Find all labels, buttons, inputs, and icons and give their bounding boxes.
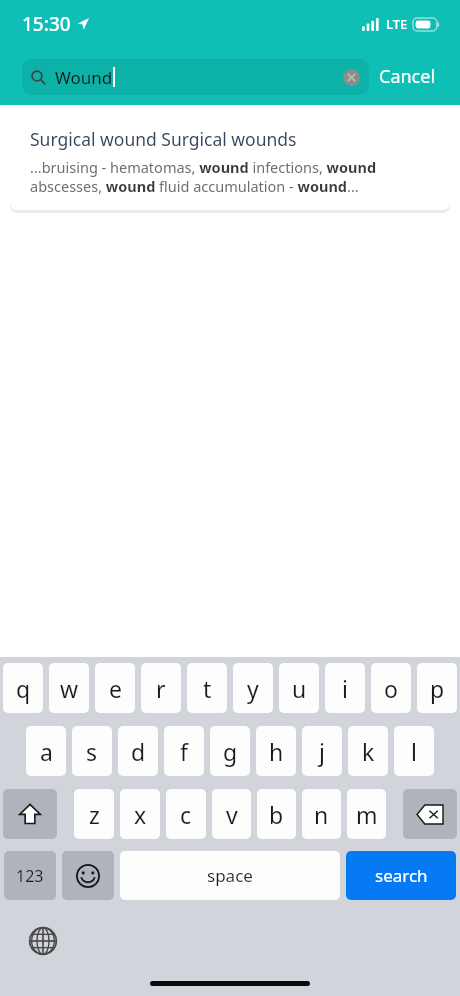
- staticText: a: [40, 736, 53, 767]
- staticText: s: [86, 736, 98, 767]
- button[interactable]: Wound: [22, 59, 369, 95]
- staticText: g: [223, 736, 238, 767]
- button[interactable]: Backspace: [403, 789, 457, 839]
- button[interactable]: k: [348, 726, 388, 776]
- button[interactable]: Clear text: [343, 69, 360, 86]
- staticText: Wound: [55, 66, 113, 89]
- button[interactable]: h: [256, 726, 296, 776]
- staticText: r: [156, 673, 166, 704]
- button[interactable]: y: [233, 663, 273, 713]
- button[interactable]: l: [394, 726, 434, 776]
- button[interactable]: Shift: [3, 789, 57, 839]
- button[interactable]: m: [347, 789, 386, 839]
- staticText: 15:30: [22, 11, 71, 37]
- button[interactable]: q: [3, 663, 43, 713]
- button[interactable]: n: [302, 789, 341, 839]
- staticText: space: [207, 864, 253, 887]
- staticText: Surgical wound Surgical wounds: [30, 127, 297, 151]
- button[interactable]: Change keyboard language: [26, 924, 60, 958]
- button[interactable]: s: [72, 726, 112, 776]
- button[interactable]: b: [257, 789, 296, 839]
- staticText: o: [384, 673, 398, 704]
- button[interactable]: d: [118, 726, 158, 776]
- button[interactable]: Surgical wound Surgical wounds: [10, 113, 450, 210]
- staticText: x: [134, 799, 147, 830]
- button[interactable]: Emoji: [62, 851, 114, 900]
- staticText: h: [269, 736, 284, 767]
- staticText: Cancel: [379, 64, 436, 89]
- button[interactable]: u: [279, 663, 319, 713]
- staticText: LTE: [386, 15, 408, 33]
- button[interactable]: x: [120, 789, 160, 839]
- button[interactable]: a: [26, 726, 66, 776]
- button[interactable]: z: [74, 789, 114, 839]
- button[interactable]: w: [49, 663, 89, 713]
- staticText: e: [109, 673, 122, 704]
- staticText: b: [269, 799, 284, 830]
- staticText: n: [314, 799, 329, 830]
- staticText: 123: [16, 865, 44, 887]
- button[interactable]: v: [212, 789, 251, 839]
- staticText: d: [131, 736, 146, 767]
- button[interactable]: i: [325, 663, 365, 713]
- staticText: z: [89, 799, 100, 830]
- button[interactable]: c: [166, 789, 206, 839]
- staticText: p: [430, 673, 445, 704]
- staticText: k: [362, 736, 375, 767]
- button[interactable]: j: [302, 726, 342, 776]
- staticText: ...bruising - hematomas, wound infection…: [30, 157, 377, 196]
- staticText: j: [319, 736, 325, 767]
- staticText: u: [292, 673, 307, 704]
- staticText: v: [226, 799, 238, 830]
- button[interactable]: r: [141, 663, 181, 713]
- button[interactable]: p: [417, 663, 457, 713]
- staticText: i: [342, 673, 348, 704]
- staticText: c: [180, 799, 192, 830]
- button[interactable]: Cancel: [369, 58, 446, 95]
- staticText: y: [247, 673, 259, 704]
- staticText: l: [411, 736, 417, 767]
- button[interactable]: space: [120, 851, 340, 900]
- button[interactable]: e: [95, 663, 135, 713]
- button[interactable]: g: [210, 726, 250, 776]
- staticText: q: [16, 673, 31, 704]
- button[interactable]: search: [346, 851, 456, 900]
- staticText: f: [180, 736, 188, 767]
- staticText: m: [356, 799, 378, 830]
- button[interactable]: o: [371, 663, 411, 713]
- staticText: w: [60, 673, 79, 704]
- staticText: search: [375, 864, 428, 887]
- button[interactable]: f: [164, 726, 204, 776]
- staticText: t: [203, 673, 212, 704]
- button[interactable]: 123: [4, 851, 56, 900]
- button[interactable]: t: [187, 663, 227, 713]
